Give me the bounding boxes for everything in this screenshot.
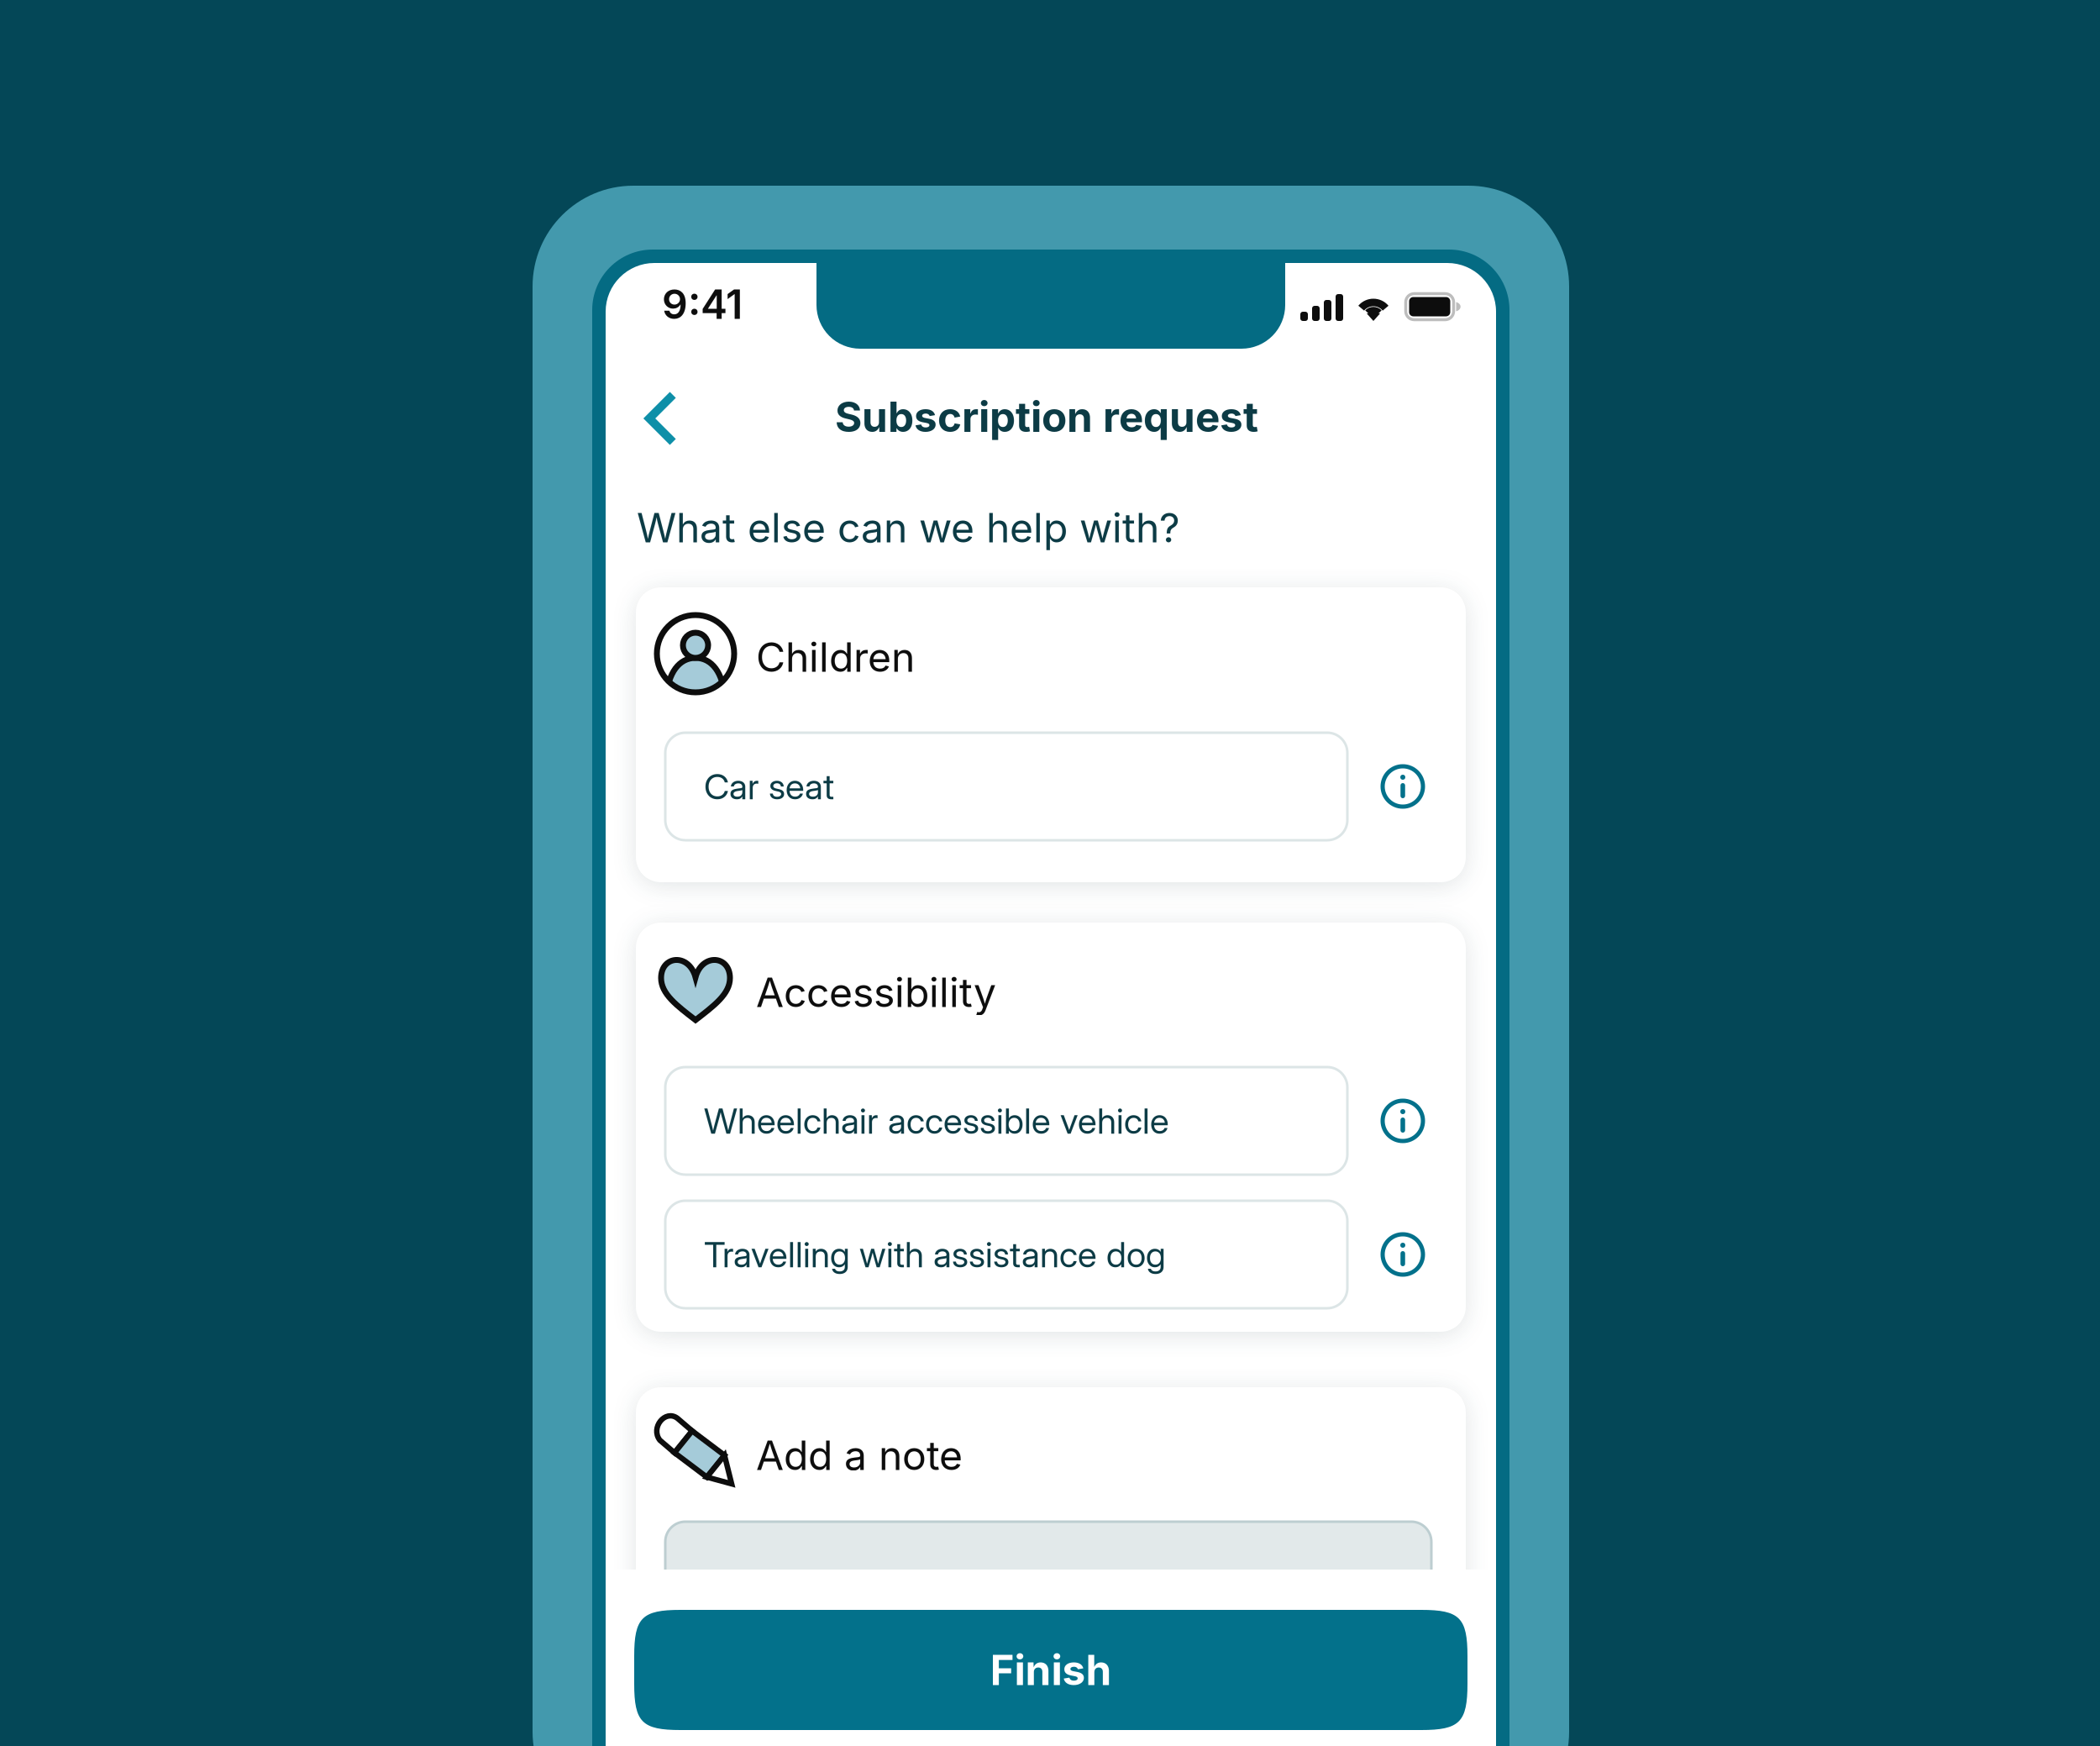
button[interactable]: More information about Car seat — [1361, 733, 1445, 840]
button[interactable]: Back — [643, 376, 735, 460]
staticText: Car seat — [704, 765, 834, 808]
staticText: Subscription request — [835, 392, 1258, 442]
button[interactable]: Travelling with assistance dog — [665, 1201, 1347, 1308]
staticText: What else can we help with? — [637, 503, 1180, 552]
staticText: Children — [756, 633, 915, 682]
staticText: Finish — [990, 1645, 1112, 1695]
button[interactable]: Car seat — [665, 733, 1347, 840]
button[interactable]: Wheelchair accessible vehicle — [665, 1067, 1347, 1175]
staticText: Wheelchair accessible vehicle — [704, 1100, 1169, 1142]
button[interactable]: More information about Travelling with a… — [1361, 1201, 1445, 1308]
staticText: 9:41 — [662, 280, 743, 329]
button[interactable]: More information about Wheelchair access… — [1361, 1067, 1445, 1175]
button[interactable]: Finish — [634, 1610, 1467, 1730]
staticText: Accessibility — [756, 968, 996, 1017]
staticText: Add a note — [756, 1431, 963, 1480]
staticText: Travelling with assistance dog — [704, 1233, 1166, 1276]
